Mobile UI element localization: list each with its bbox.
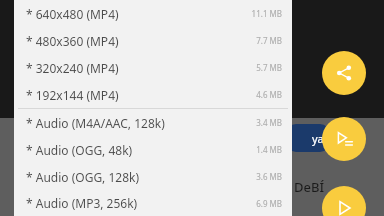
staticText: 3.4 MB: [256, 117, 282, 128]
button[interactable]: Add to playlist: [322, 117, 366, 161]
staticText: * 640x480 (MP4): [26, 6, 251, 22]
button[interactable]: * 320x240 (MP4): [14, 54, 292, 81]
staticText: * 480x360 (MP4): [26, 33, 256, 49]
staticText: ya: [312, 131, 324, 146]
staticText: * 320x240 (MP4): [26, 60, 256, 76]
staticText: 6.9 MB: [256, 198, 282, 209]
staticText: 3.6 MB: [256, 171, 282, 182]
button[interactable]: * 480x360 (MP4): [14, 27, 292, 54]
staticText: 11.1 MB: [251, 8, 282, 19]
button[interactable]: Share: [322, 51, 366, 95]
staticText: * Audio (M4A/AAC, 128k): [26, 115, 256, 131]
staticText: * Audio (OGG, 48k): [26, 142, 256, 158]
staticText: * Audio (OGG, 128k): [26, 169, 256, 185]
staticText: * 192x144 (MP4): [26, 87, 256, 103]
button[interactable]: * Audio (OGG, 128k): [14, 163, 292, 190]
button[interactable]: * Audio (OGG, 48k): [14, 136, 292, 163]
staticText: 1.4 MB: [256, 144, 282, 155]
button[interactable]: * 192x144 (MP4): [14, 81, 292, 108]
staticText: 5.7 MB: [256, 62, 282, 73]
staticText: DeBÍ: [294, 178, 325, 196]
button[interactable]: Play: [322, 186, 366, 216]
staticText: 7.7 MB: [256, 35, 282, 46]
button[interactable]: * Audio (MP3, 256k): [14, 190, 292, 216]
staticText: * Audio (MP3, 256k): [26, 195, 256, 211]
button[interactable]: * 640x480 (MP4): [14, 0, 292, 27]
button[interactable]: * Audio (M4A/AAC, 128k): [14, 109, 292, 136]
staticText: 4.6 MB: [256, 89, 282, 100]
